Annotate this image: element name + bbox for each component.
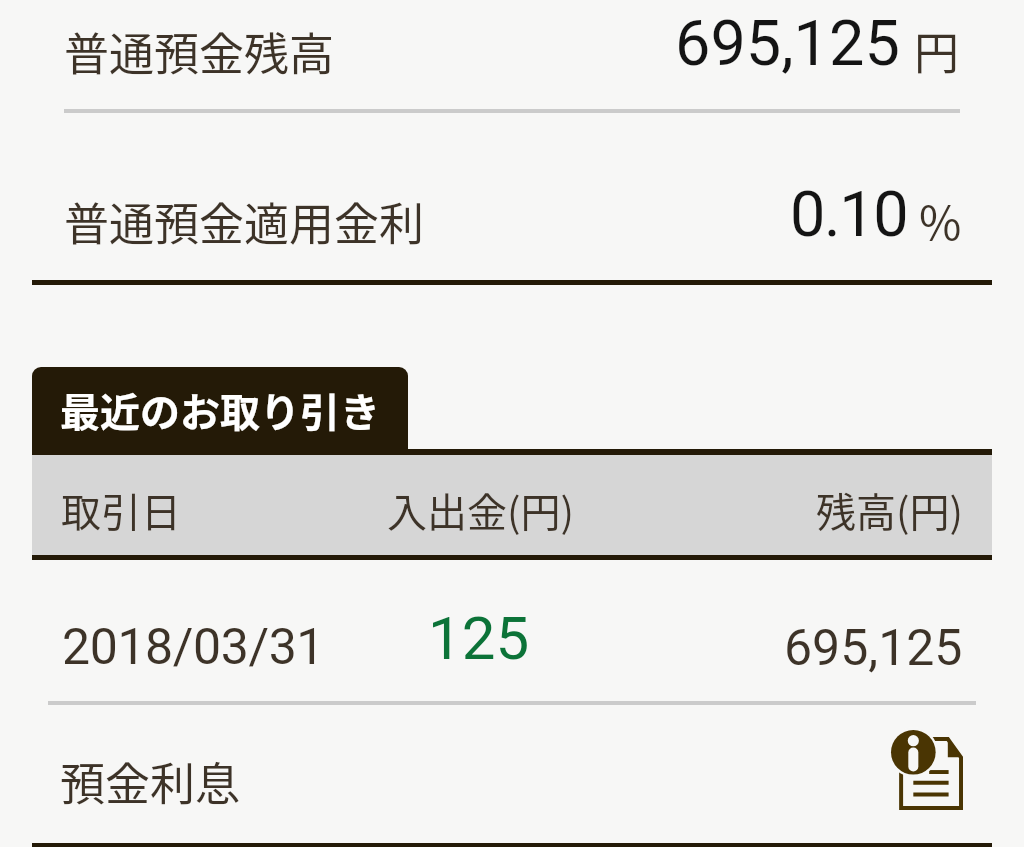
staticText: 預金利息: [60, 749, 241, 814]
button[interactable]: 預金利息: [0, 705, 1024, 843]
staticText: 普通預金残高: [64, 19, 335, 84]
button[interactable]: 普通預金残高: [0, 0, 1024, 109]
button[interactable]: 取引日: [32, 455, 992, 555]
button[interactable]: Transaction details: [891, 729, 963, 811]
staticText: 残高(円): [816, 481, 964, 539]
button[interactable]: 普通預金適用金利: [0, 113, 1024, 280]
staticText: 取引日: [61, 481, 181, 539]
staticText: 695,125: [784, 619, 963, 678]
staticText: 125: [428, 603, 530, 673]
staticText: 円: [914, 18, 960, 83]
button[interactable]: 最近のお取り引き: [32, 367, 408, 455]
staticText: %: [919, 187, 962, 254]
button[interactable]: 2018/03/31: [0, 560, 1024, 701]
staticText: 2018/03/31: [62, 618, 325, 677]
staticText: 入出金(円): [387, 481, 575, 539]
staticText: 695,125: [675, 7, 900, 81]
staticText: 最近のお取り引き: [60, 381, 380, 439]
staticText: 0.10: [790, 178, 908, 252]
staticText: 普通預金適用金利: [64, 189, 425, 254]
